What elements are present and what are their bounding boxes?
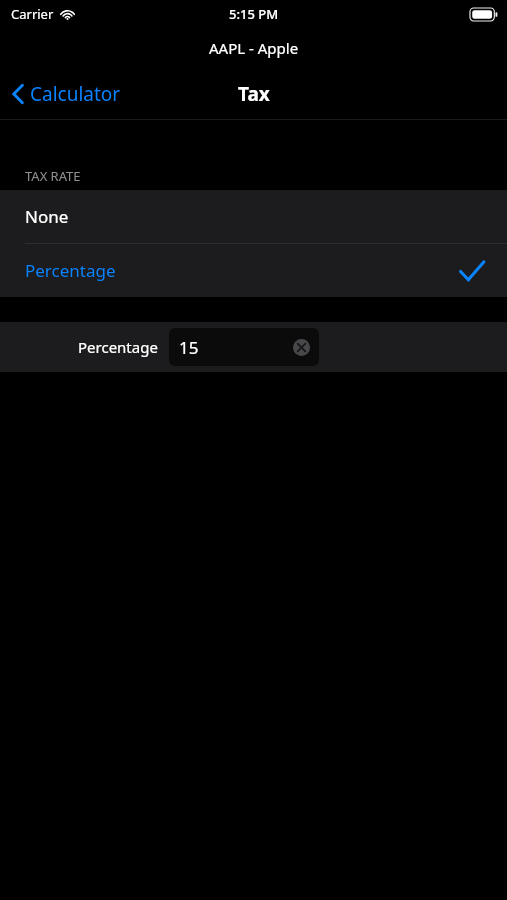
staticText: 5:15 PM [229,5,279,23]
staticText: Tax [238,81,270,107]
button[interactable]: None [0,190,507,243]
other: Selected [459,260,485,282]
staticText: 15 [179,336,199,359]
button[interactable]: 15 [169,328,319,366]
button[interactable]: Clear text [292,338,311,357]
button[interactable]: Calculator [0,68,131,120]
staticText: TAX RATE [25,167,81,185]
staticText: Carrier [11,5,54,23]
staticText: Percentage [25,259,116,282]
staticText: None [25,205,69,228]
staticText: AAPL - Apple [209,38,299,58]
button[interactable]: Percentage [0,244,507,297]
staticText: Calculator [30,81,121,107]
staticText: Percentage [78,337,158,357]
